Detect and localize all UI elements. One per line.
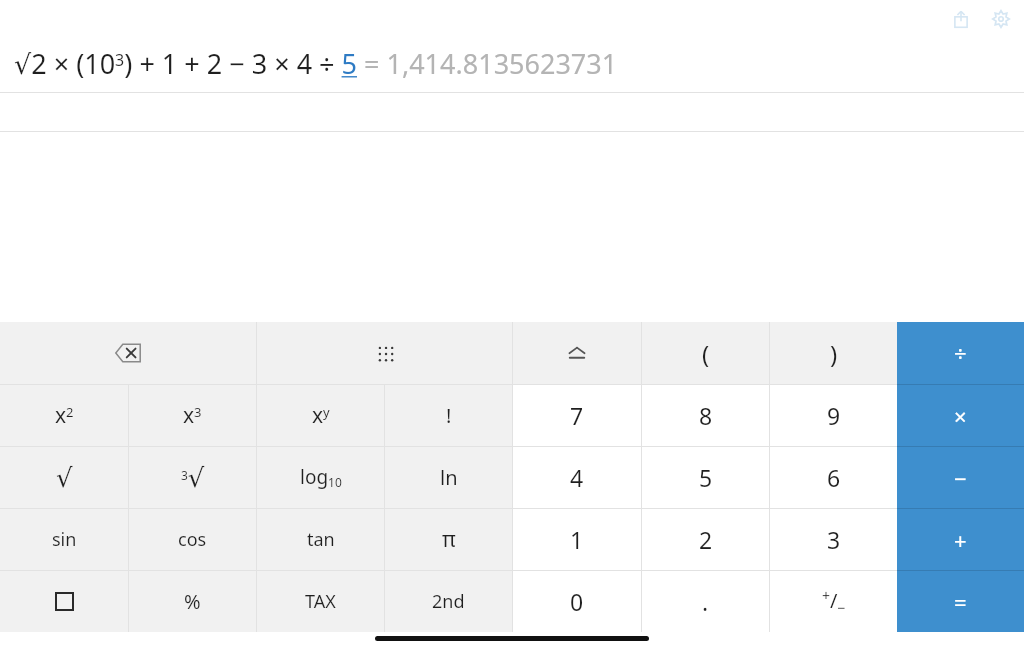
button[interactable]: Settings: [986, 4, 1016, 34]
staticText: +: [954, 525, 967, 555]
button[interactable]: x3: [129, 385, 256, 446]
button[interactable]: +: [897, 509, 1024, 570]
button[interactable]: ): [770, 322, 897, 384]
button[interactable]: ln: [385, 447, 512, 508]
button[interactable]: (: [642, 322, 769, 384]
staticText: 2: [699, 524, 713, 555]
staticText: log10: [300, 464, 342, 491]
button[interactable]: +/−: [770, 571, 897, 632]
button[interactable]: 3: [770, 509, 897, 570]
staticText: √: [56, 463, 73, 493]
button[interactable]: [0, 571, 128, 632]
staticText: ×: [954, 401, 967, 431]
staticText: 2nd: [432, 589, 465, 614]
button[interactable]: log10: [257, 447, 384, 508]
button[interactable]: x2: [0, 385, 128, 446]
button[interactable]: Share: [946, 4, 976, 34]
staticText: 9: [827, 400, 841, 431]
staticText: x2: [55, 401, 74, 430]
staticText: xy: [312, 401, 330, 430]
staticText: .: [702, 586, 709, 617]
staticText: x3: [183, 401, 202, 430]
staticText: +/−: [822, 586, 846, 617]
button[interactable]: 4: [513, 447, 641, 508]
staticText: 5: [699, 462, 713, 493]
staticText: ln: [440, 464, 458, 491]
staticText: 4: [570, 462, 584, 493]
button[interactable]: xy: [257, 385, 384, 446]
button[interactable]: .: [642, 571, 769, 632]
staticText: tan: [307, 527, 335, 552]
button[interactable]: 6: [770, 447, 897, 508]
button[interactable]: 3√: [129, 447, 256, 508]
button[interactable]: 9: [770, 385, 897, 446]
button[interactable]: %: [129, 571, 256, 632]
staticText: cos: [178, 527, 207, 552]
button[interactable]: tan: [257, 509, 384, 570]
button[interactable]: 5: [642, 447, 769, 508]
staticText: !: [446, 402, 452, 429]
staticText: 3√: [181, 463, 205, 493]
button[interactable]: 2: [642, 509, 769, 570]
button[interactable]: !: [385, 385, 512, 446]
staticText: π: [442, 525, 456, 554]
button[interactable]: =: [897, 571, 1024, 632]
staticText: ÷: [954, 338, 967, 368]
staticText: =: [954, 587, 967, 617]
staticText: %: [184, 588, 201, 615]
staticText: 8: [699, 400, 713, 431]
staticText: 6: [827, 462, 841, 493]
button[interactable]: −: [897, 447, 1024, 508]
button[interactable]: 7: [513, 385, 641, 446]
button[interactable]: 1: [513, 509, 641, 570]
button[interactable]: 8: [642, 385, 769, 446]
staticText: TAX: [305, 589, 336, 614]
button[interactable]: TAX: [257, 571, 384, 632]
staticText: 0: [570, 586, 584, 617]
button[interactable]: sin: [0, 509, 128, 570]
button[interactable]: cos: [129, 509, 256, 570]
staticText: 1: [570, 524, 584, 555]
button[interactable]: ×: [897, 385, 1024, 446]
button[interactable]: 2nd: [385, 571, 512, 632]
button[interactable]: Collapse: [513, 322, 641, 384]
button[interactable]: ÷: [897, 322, 1024, 384]
button[interactable]: π: [385, 509, 512, 570]
button[interactable]: Backspace: [0, 322, 256, 384]
staticText: √2 × (103) + 1 + 2 − 3 × 4 ÷ 5 = 1,414.8…: [14, 45, 618, 82]
button[interactable]: More functions: [257, 322, 512, 384]
staticText: ): [830, 337, 838, 370]
staticText: −: [954, 463, 967, 493]
staticText: sin: [52, 527, 77, 552]
button[interactable]: √: [0, 447, 128, 508]
staticText: 7: [570, 400, 584, 431]
staticText: (: [702, 337, 710, 370]
staticText: 3: [827, 524, 841, 555]
button[interactable]: 0: [513, 571, 641, 632]
